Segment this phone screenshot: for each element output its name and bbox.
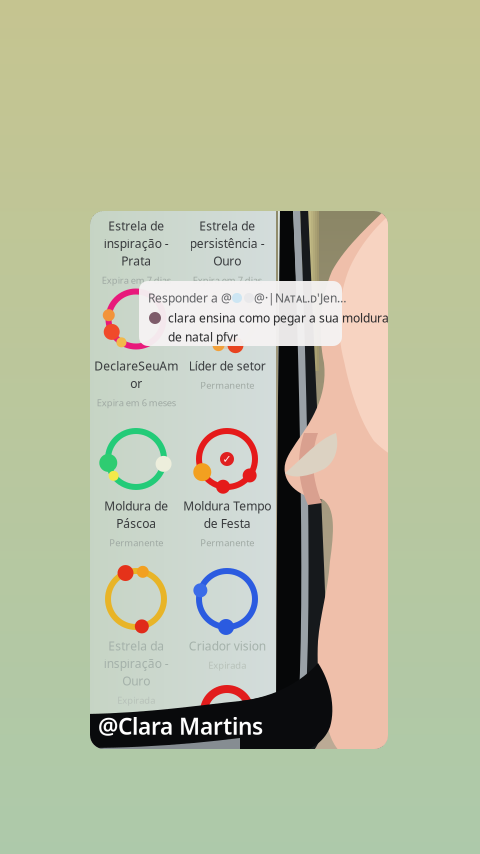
staticText: Líder de setor [188,358,265,374]
staticText: Criador vision [188,638,265,654]
button[interactable]: Estrela de inspiração - Prata [101,144,170,286]
staticText: Expirada [208,659,246,671]
button[interactable]: DeclareSeuAm or [94,284,178,409]
staticText: @Clara Martins [98,711,263,741]
staticText: DeclareSeuAm or [94,358,178,391]
staticText: Responder a @ [148,290,232,306]
button[interactable]: Moldura de Páscoa [102,424,170,549]
button[interactable]: ✓ [183,424,271,549]
staticText: Permanente [109,536,163,549]
staticText: Estrela de inspiração - Prata [103,218,168,269]
staticText: Expira em 6 meses [96,396,175,409]
staticText: Estrela da inspiração - Ouro [103,638,168,689]
staticText: Moldura Tempo de Festa [183,498,271,531]
staticText: Expirada [117,694,155,706]
staticText: de natal pfvr [168,329,238,345]
button[interactable]: Líder de setor [188,284,265,391]
staticText: Moldura de Páscoa [104,498,168,531]
button[interactable]: Estrela de persistência - Ouro [189,144,264,286]
staticText: Permanente [200,536,254,549]
staticText: Expira em 7 dias [192,274,261,286]
button[interactable]: Criador vision [188,564,265,671]
staticText: ✓ [222,453,231,465]
button[interactable]: Estrela da inspiração - Ouro [102,564,170,706]
staticText: Permanente [200,379,254,391]
staticText: clara ensina como pegar a sua moldura [168,310,389,326]
staticText: @·|Nᴀᴛᴀʟ.ᴅ'Jen… [254,290,346,306]
staticText: Expira em 7 dias [101,274,170,286]
staticText: Estrela de persistência - Ouro [189,218,264,269]
